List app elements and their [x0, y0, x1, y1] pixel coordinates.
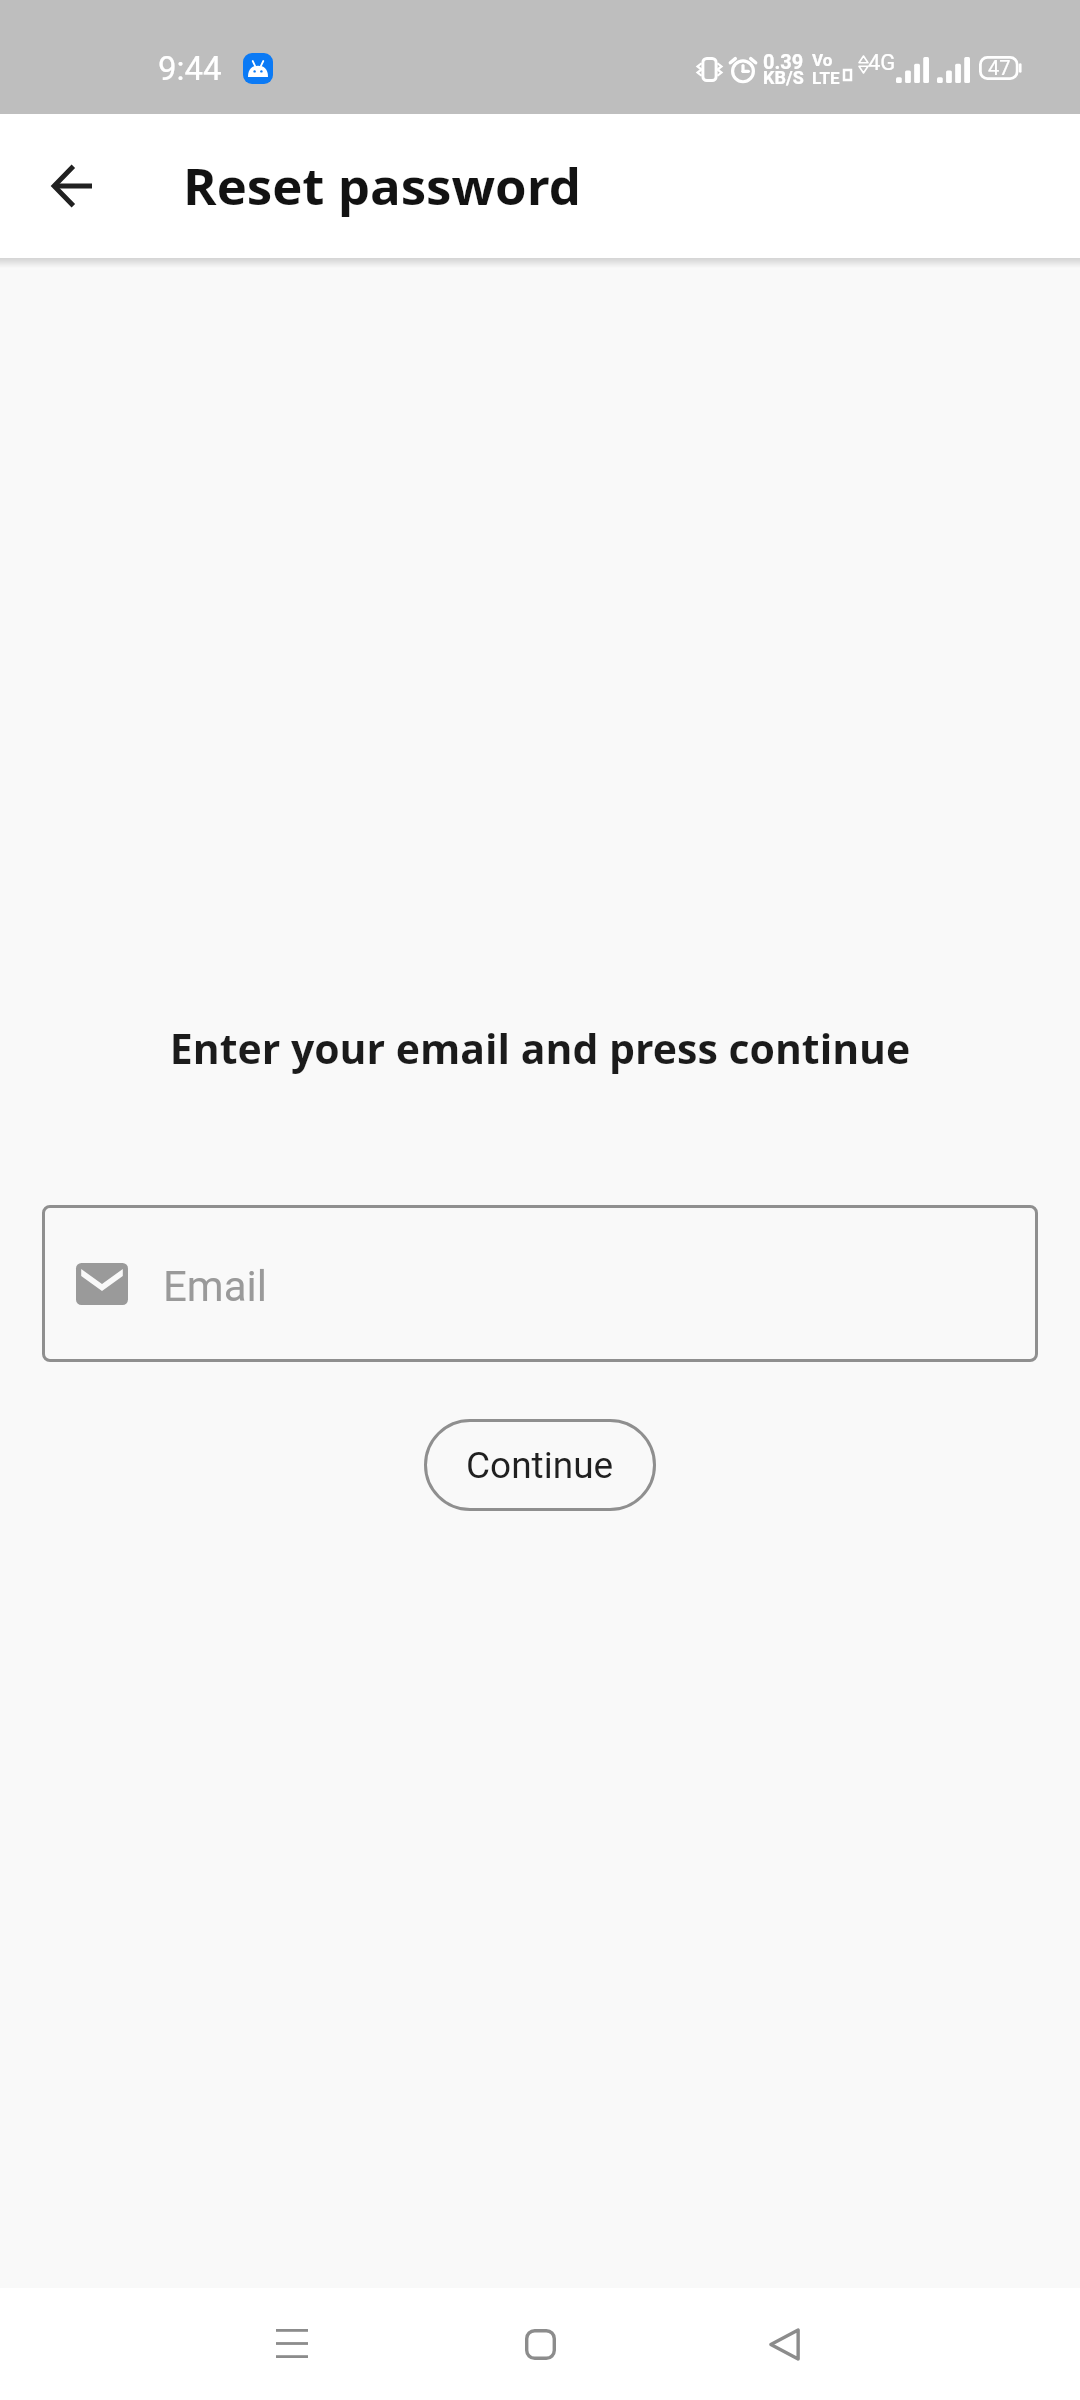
staticText: Reset password: [183, 150, 582, 219]
staticText: Email: [163, 1262, 267, 1311]
staticText: LTE: [812, 68, 840, 88]
staticText: 9:44: [158, 49, 222, 88]
button[interactable]: Back: [684, 2288, 884, 2400]
button[interactable]: Home: [440, 2288, 640, 2400]
staticText: 4G: [868, 50, 896, 76]
button[interactable]: Recent apps: [192, 2288, 392, 2400]
button[interactable]: Continue: [424, 1419, 656, 1511]
staticText: 0.39: [763, 50, 804, 73]
staticText: 47: [988, 56, 1011, 79]
staticText: Continue: [466, 1444, 614, 1487]
staticText: KB/S: [763, 67, 804, 88]
button[interactable]: Back: [23, 138, 119, 234]
staticText: Enter your email and press continue: [0, 1020, 1080, 1076]
button[interactable]: Email: [42, 1205, 1038, 1362]
staticText: Vo: [812, 50, 833, 70]
